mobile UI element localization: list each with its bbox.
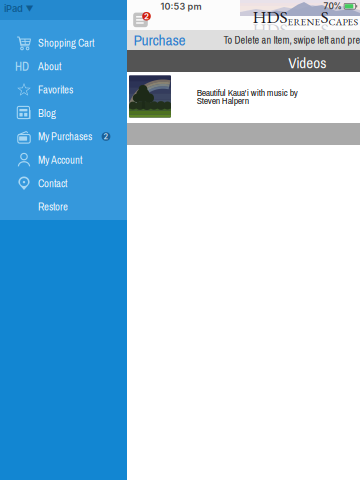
staticText: My Purchases xyxy=(38,129,92,144)
button[interactable]: Purchase xyxy=(127,30,183,50)
staticText: S xyxy=(320,18,328,41)
button[interactable]: Blog xyxy=(0,101,127,125)
staticText: 2 xyxy=(144,11,149,21)
staticText: R xyxy=(293,15,300,28)
staticText: E xyxy=(314,28,320,41)
staticText: Favorites xyxy=(38,82,73,97)
staticText: E xyxy=(347,15,353,28)
staticText: Shopping Cart xyxy=(38,36,94,50)
staticText: N xyxy=(306,15,314,28)
staticText: About xyxy=(38,59,61,73)
button[interactable]: Contact xyxy=(0,172,127,195)
button[interactable]: HD xyxy=(0,55,127,78)
staticText: Steven Halpern xyxy=(197,94,249,107)
staticText: iPad xyxy=(4,3,23,14)
staticText: H xyxy=(252,6,266,28)
staticText: R xyxy=(293,28,300,41)
staticText: E xyxy=(347,28,353,41)
staticText: ▼ xyxy=(25,4,33,13)
button[interactable]: Restore xyxy=(0,195,127,218)
staticText: E xyxy=(300,28,306,41)
staticText: S xyxy=(353,28,358,41)
staticText: To Delete an Item, swipe left and press xyxy=(223,33,360,47)
staticText: P xyxy=(342,15,347,28)
staticText: Contact xyxy=(38,176,67,190)
staticText: Videos xyxy=(288,53,326,73)
staticText: A xyxy=(335,28,342,41)
button[interactable]: My Purchases xyxy=(0,125,127,148)
staticText: Restore xyxy=(38,199,68,214)
staticText: Blog xyxy=(38,106,56,120)
staticText: P xyxy=(342,28,347,41)
staticText: 70% xyxy=(323,1,341,11)
staticText: E xyxy=(314,15,320,28)
staticText: 10:53 pm xyxy=(160,1,201,12)
button[interactable]: Shopping Cart xyxy=(0,31,127,55)
staticText: N xyxy=(306,28,314,41)
staticText: E xyxy=(300,15,306,28)
staticText: S xyxy=(320,6,328,28)
staticText: Beautiful Kaua'i with music by xyxy=(197,86,298,99)
staticText: HD xyxy=(15,58,29,74)
staticText: C xyxy=(328,28,335,41)
button[interactable]: Favorites xyxy=(0,78,127,101)
staticText: S xyxy=(279,18,287,41)
staticText: D xyxy=(266,18,279,41)
staticText: Purchase xyxy=(133,30,185,50)
staticText: S xyxy=(353,15,358,28)
button[interactable]: My Account xyxy=(0,148,127,172)
staticText: 2 xyxy=(103,132,108,141)
button[interactable]: Menu xyxy=(131,5,153,27)
staticText: E xyxy=(287,15,293,28)
staticText: S xyxy=(279,6,287,28)
staticText: E xyxy=(287,28,293,41)
staticText: H xyxy=(252,18,266,41)
staticText: D xyxy=(266,6,279,28)
staticText: My Account xyxy=(38,153,82,167)
staticText: C xyxy=(328,15,335,28)
staticText: A xyxy=(335,15,342,28)
button[interactable]: Beautiful Kaua'i with music by xyxy=(127,72,360,123)
